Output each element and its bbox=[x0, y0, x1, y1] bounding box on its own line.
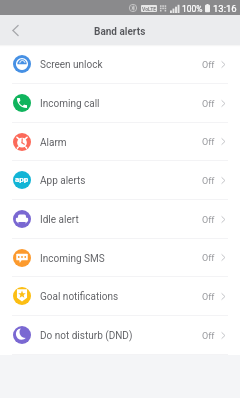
staticText: App alerts bbox=[40, 175, 86, 187]
button[interactable]: Incoming SMS bbox=[0, 239, 240, 277]
staticText: Do not disturb (DND) bbox=[40, 330, 133, 342]
staticText: Incoming SMS bbox=[40, 253, 105, 265]
staticText: 100% bbox=[182, 4, 203, 14]
staticText: Off bbox=[202, 292, 215, 303]
button[interactable]: Do not disturb (DND) bbox=[0, 316, 240, 355]
button[interactable]: app bbox=[0, 161, 240, 200]
staticText: app bbox=[15, 175, 29, 184]
button[interactable]: Idle alert bbox=[0, 200, 240, 239]
staticText: Alarm bbox=[40, 137, 67, 149]
staticText: Off bbox=[202, 60, 215, 71]
button[interactable]: Goal notifications bbox=[0, 277, 240, 316]
staticText: Off bbox=[202, 331, 215, 342]
staticText: 13:16 bbox=[213, 3, 237, 14]
staticText: Goal notifications bbox=[40, 291, 119, 303]
staticText: Off bbox=[202, 137, 215, 148]
staticText: Idle alert bbox=[40, 214, 79, 226]
staticText: Off bbox=[202, 99, 215, 110]
staticText: Off bbox=[202, 176, 215, 187]
button[interactable]: Screen unlock bbox=[0, 45, 240, 84]
staticText: Off bbox=[202, 215, 215, 226]
staticText: Incoming call bbox=[40, 98, 100, 110]
staticText: Screen unlock bbox=[40, 59, 103, 71]
button[interactable]: Alarm bbox=[0, 123, 240, 161]
staticText: Band alerts bbox=[94, 26, 146, 38]
staticText: VoLTE bbox=[142, 6, 157, 12]
button[interactable]: Incoming call bbox=[0, 84, 240, 123]
button[interactable]: Back bbox=[0, 16, 28, 44]
staticText: Off bbox=[202, 253, 215, 264]
